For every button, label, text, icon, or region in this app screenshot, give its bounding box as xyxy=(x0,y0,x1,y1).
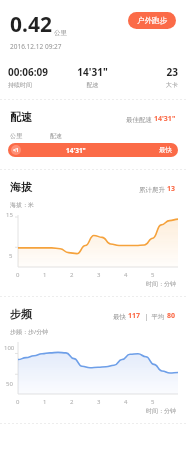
staticText: 时间：分钟 xyxy=(0,407,176,415)
staticText: <1 xyxy=(13,147,19,154)
staticText: 配速 xyxy=(10,110,126,124)
staticText: 3 xyxy=(97,398,124,406)
staticText: 海拔 xyxy=(10,180,139,194)
staticText: 2 xyxy=(70,398,97,406)
staticText: 配速 xyxy=(50,132,62,140)
staticText: 13 xyxy=(167,184,176,194)
staticText: 公里 xyxy=(10,132,50,140)
staticText: 14'31" xyxy=(154,114,176,124)
staticText: 0.42 xyxy=(10,10,52,39)
staticText: 步频：步/分钟 xyxy=(10,328,49,336)
staticText: 最快 xyxy=(113,312,128,321)
button[interactable]: 户外跑步 xyxy=(128,12,176,29)
staticText: 80 xyxy=(167,311,176,321)
staticText: 公里 xyxy=(54,29,67,37)
button[interactable]: <1 xyxy=(8,143,178,157)
staticText: 3 xyxy=(97,271,124,279)
staticText: 大卡 xyxy=(121,81,178,89)
staticText: 1 xyxy=(43,271,70,279)
staticText: 配速 xyxy=(64,81,121,89)
staticText: 0 xyxy=(16,271,43,279)
staticText: 117 xyxy=(128,311,141,321)
staticText: 1 xyxy=(43,398,70,406)
staticText: 15 xyxy=(6,211,13,219)
staticText: 最佳配速 xyxy=(126,115,154,124)
button[interactable]: 23 xyxy=(121,65,178,89)
staticText: 4 xyxy=(124,271,151,279)
staticText: 0 xyxy=(16,398,43,406)
staticText: 海拔：米 xyxy=(10,201,34,209)
staticText: 步频 xyxy=(10,307,113,321)
staticText: 持续时间 xyxy=(8,81,64,89)
staticText: | 平均 xyxy=(141,312,167,321)
staticText: 14'31" xyxy=(64,65,121,79)
staticText: 23 xyxy=(121,65,178,79)
staticText: 14'31" xyxy=(66,146,86,155)
staticText: 5 xyxy=(151,398,178,406)
staticText: 最快 xyxy=(8,146,172,154)
staticText: 时间：分钟 xyxy=(0,280,176,288)
staticText: 户外跑步 xyxy=(137,16,167,25)
staticText: 2016.12.12 09:27 xyxy=(10,42,62,51)
staticText: 2 xyxy=(70,271,97,279)
staticText: 5 xyxy=(9,252,13,260)
staticText: 4 xyxy=(124,398,151,406)
staticText: 5 xyxy=(151,271,178,279)
staticText: 50 xyxy=(6,380,13,388)
button[interactable]: 00:06:09 xyxy=(8,65,64,89)
staticText: 累计爬升 xyxy=(139,185,167,194)
staticText: 100 xyxy=(4,344,15,352)
staticText: 00:06:09 xyxy=(8,65,64,79)
button[interactable]: 14'31" xyxy=(64,65,121,89)
